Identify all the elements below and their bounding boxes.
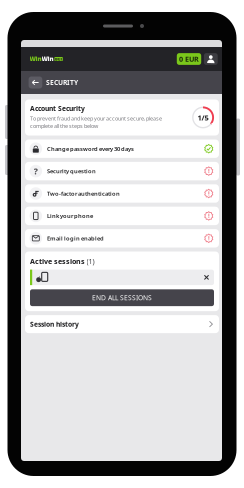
staticText: Win bbox=[42, 55, 54, 63]
staticText: Two-factor authentication bbox=[47, 190, 120, 197]
staticText: Session history bbox=[30, 320, 79, 329]
button[interactable]: End session bbox=[199, 270, 214, 285]
staticText: To prevent fraud and keep your account s… bbox=[30, 115, 162, 129]
staticText: 0 EUR bbox=[179, 54, 199, 64]
staticText: END ALL SESSIONS bbox=[92, 293, 152, 302]
button[interactable]: 0 EUR bbox=[177, 53, 201, 65]
staticText: Email login enabled bbox=[47, 234, 104, 242]
button[interactable]: Back bbox=[29, 76, 42, 88]
button[interactable]: ? bbox=[25, 162, 219, 180]
button[interactable]: Email login enabled bbox=[25, 229, 219, 247]
staticText: Win bbox=[30, 55, 42, 63]
staticText: Security question bbox=[47, 167, 96, 175]
staticText: 1/5 bbox=[197, 112, 208, 123]
button[interactable]: Link your phone bbox=[25, 207, 219, 225]
staticText: Account Security bbox=[30, 104, 85, 113]
staticText: (1) bbox=[87, 256, 95, 266]
staticText: ? bbox=[34, 165, 38, 177]
staticText: Active sessions bbox=[30, 256, 85, 266]
button[interactable]: Session history bbox=[25, 315, 219, 333]
staticText: Change password every 30 days bbox=[47, 145, 134, 153]
staticText: Link your phone bbox=[47, 212, 93, 220]
staticText: SECURITY bbox=[46, 78, 78, 87]
button[interactable]: WinWin Bet home bbox=[30, 55, 63, 63]
staticText: BET bbox=[55, 56, 62, 62]
button[interactable]: END ALL SESSIONS bbox=[30, 289, 214, 306]
button[interactable]: Account bbox=[204, 53, 218, 65]
button[interactable]: Two-factor authentication bbox=[25, 184, 219, 203]
button[interactable]: Change password every 30 days bbox=[25, 139, 219, 158]
